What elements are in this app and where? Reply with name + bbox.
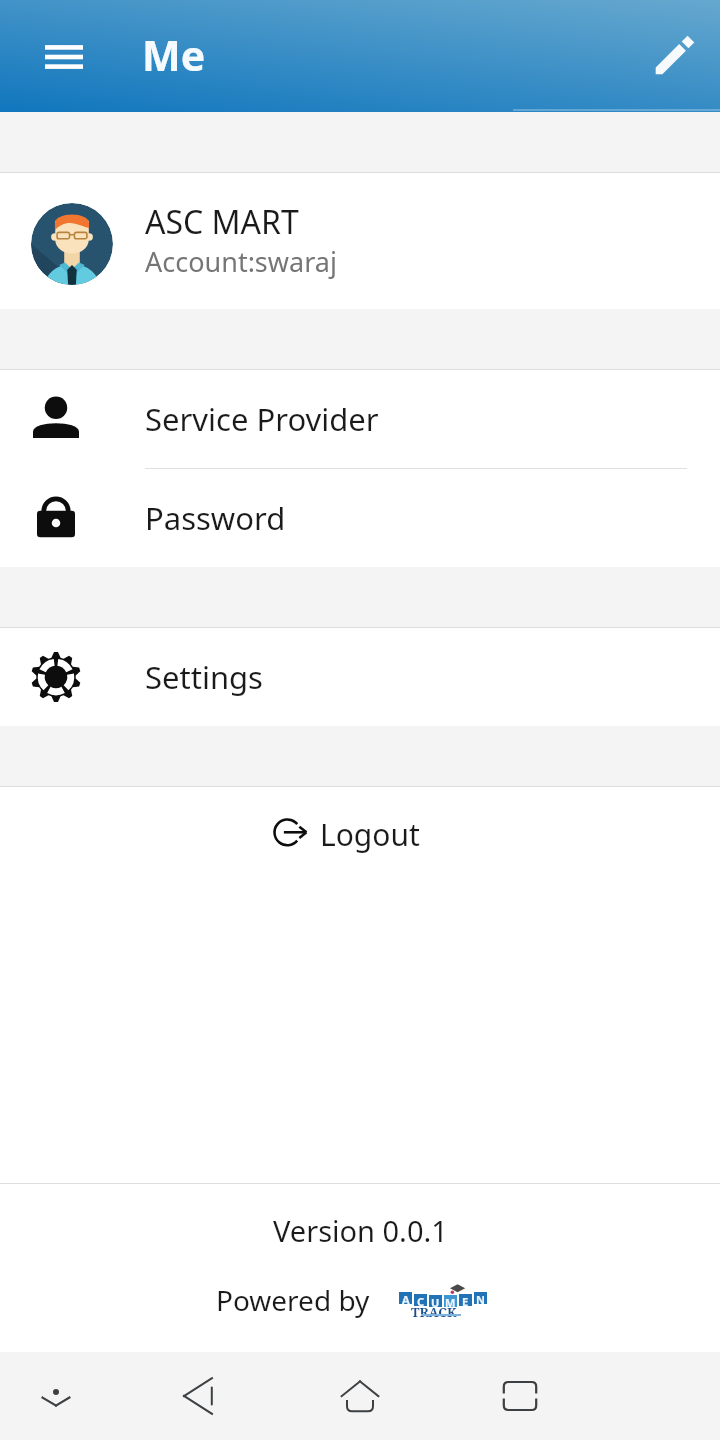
staticText: Powered by bbox=[216, 1281, 370, 1319]
button[interactable]: Open navigation menu bbox=[20, 12, 108, 100]
button[interactable]: Settings bbox=[0, 628, 720, 726]
button[interactable]: Logout bbox=[0, 787, 720, 887]
button[interactable]: Home bbox=[320, 1352, 400, 1440]
staticText: ASC MART bbox=[145, 200, 299, 244]
button[interactable]: ASC MART bbox=[0, 173, 720, 309]
staticText: Settings bbox=[145, 656, 263, 698]
staticText: Logout bbox=[320, 814, 420, 855]
button[interactable]: Recent apps bbox=[480, 1352, 560, 1440]
staticText: Password bbox=[145, 497, 286, 539]
button[interactable]: Hide keyboard bbox=[16, 1352, 96, 1440]
button[interactable]: Back bbox=[160, 1352, 240, 1440]
staticText: M bbox=[445, 1295, 456, 1307]
staticText: Me bbox=[142, 27, 206, 83]
staticText: TRACK bbox=[411, 1303, 457, 1321]
staticText: C bbox=[417, 1294, 425, 1306]
button[interactable]: Password bbox=[0, 469, 720, 567]
staticText: Version 0.0.1 bbox=[273, 1211, 448, 1250]
staticText: Account:swaraj bbox=[145, 243, 337, 280]
staticText: N bbox=[476, 1292, 485, 1304]
staticText: E bbox=[462, 1294, 469, 1306]
button[interactable]: Service Provider bbox=[0, 370, 720, 469]
staticText: U bbox=[431, 1295, 440, 1307]
staticText: Service Provider bbox=[145, 398, 379, 440]
staticText: A bbox=[402, 1292, 410, 1304]
button[interactable]: Edit profile bbox=[631, 12, 719, 100]
